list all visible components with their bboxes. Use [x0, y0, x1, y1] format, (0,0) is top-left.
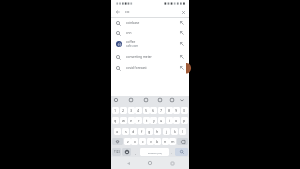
button[interactable]: Emoji [122, 148, 131, 156]
staticText: n [164, 139, 167, 144]
staticText: cnn [126, 31, 132, 35]
button[interactable]: l [179, 128, 186, 135]
button[interactable]: Back [114, 8, 122, 16]
button[interactable]: converting meter [111, 52, 189, 62]
button[interactable]: Search [175, 148, 188, 156]
button[interactable]: More [178, 96, 186, 104]
button[interactable]: Home [145, 158, 155, 168]
staticText: cafe.com [126, 44, 139, 48]
staticText: q [114, 118, 117, 123]
button[interactable]: GIF [127, 96, 135, 104]
staticText: e [130, 118, 133, 123]
button[interactable]: k [171, 128, 178, 135]
button[interactable]: 8 [166, 107, 173, 114]
button[interactable]: r [135, 117, 142, 124]
staticText: b [156, 139, 159, 144]
staticText: o [175, 118, 178, 123]
button[interactable]: Backspace [177, 138, 188, 145]
staticText: 6 [152, 108, 155, 113]
button[interactable]: h [154, 128, 161, 135]
button[interactable]: Recents [167, 158, 177, 168]
button[interactable]: 6 [150, 107, 157, 114]
staticText: 9 [175, 108, 178, 113]
button[interactable]: p [181, 117, 188, 124]
button[interactable]: cnn [111, 28, 189, 38]
button[interactable]: z [124, 138, 131, 145]
staticText: j [166, 129, 167, 134]
staticText: 0 [183, 108, 186, 113]
button[interactable]: Stickers [142, 96, 150, 104]
staticText: co [125, 9, 130, 14]
button[interactable]: Shift [112, 138, 123, 145]
button[interactable]: Insert suggestion [178, 40, 186, 48]
staticText: English (US) [148, 151, 162, 154]
staticText: f [141, 129, 143, 134]
button[interactable]: Insert suggestion [178, 64, 186, 72]
staticText: converting meter [126, 55, 152, 59]
staticText: 2 [122, 108, 125, 113]
staticText: i [169, 118, 170, 123]
button[interactable]: n [162, 138, 169, 145]
button[interactable]: coinbase [111, 18, 189, 28]
staticText: , [135, 150, 136, 155]
button[interactable]: 7 [158, 107, 165, 114]
staticText: y [153, 118, 155, 123]
staticText: 7 [160, 108, 163, 113]
button[interactable]: Back [123, 158, 133, 168]
button[interactable]: 1 [112, 107, 119, 114]
button[interactable]: Insert suggestion [178, 53, 186, 61]
button[interactable]: a [114, 128, 121, 135]
button[interactable]: i [166, 117, 173, 124]
staticText: 8 [168, 108, 171, 113]
staticText: h [156, 129, 159, 134]
button[interactable]: Emoji [112, 96, 120, 104]
staticText: v [150, 139, 152, 144]
staticText: s [125, 129, 127, 134]
button[interactable]: coffee [111, 39, 189, 49]
button[interactable]: 2 [120, 107, 127, 114]
button[interactable]: o [173, 117, 180, 124]
button[interactable]: Translate [156, 96, 164, 104]
staticText: 5 [145, 108, 148, 113]
button[interactable]: c [139, 138, 146, 145]
button[interactable]: Clear [179, 8, 187, 16]
button[interactable]: m [169, 138, 176, 145]
button[interactable]: f [138, 128, 145, 135]
button[interactable]: e [128, 117, 135, 124]
staticText: coffee [126, 40, 136, 44]
button[interactable]: 9 [173, 107, 180, 114]
button[interactable]: covid forecast [111, 63, 189, 73]
button[interactable]: q [112, 117, 119, 124]
button[interactable]: v [147, 138, 154, 145]
staticText: r [138, 118, 140, 123]
button[interactable]: 5 [143, 107, 150, 114]
button[interactable]: y [150, 117, 157, 124]
button[interactable]: 0 [181, 107, 188, 114]
button[interactable]: b [154, 138, 161, 145]
button[interactable]: English (US) [140, 148, 169, 156]
button[interactable]: t [143, 117, 150, 124]
staticText: 3 [130, 108, 133, 113]
button[interactable]: Settings [168, 96, 176, 104]
staticText: coinbase [126, 21, 140, 25]
button[interactable]: u [158, 117, 165, 124]
staticText: 4 [137, 108, 140, 113]
button[interactable]: Insert suggestion [178, 19, 186, 27]
button[interactable]: Insert suggestion [178, 29, 186, 37]
button[interactable]: s [122, 128, 129, 135]
staticText: l [182, 129, 183, 134]
button[interactable]: x [131, 138, 138, 145]
button[interactable]: j [163, 128, 170, 135]
button[interactable]: w [120, 117, 127, 124]
button[interactable]: 4 [135, 107, 142, 114]
staticText: k [174, 129, 176, 134]
staticText: ?123 [114, 150, 120, 154]
staticText: 1 [114, 108, 117, 113]
staticText: . [171, 150, 172, 155]
button[interactable]: . [169, 148, 174, 156]
button[interactable]: d [130, 128, 137, 135]
button[interactable]: 3 [128, 107, 135, 114]
button[interactable]: g [146, 128, 153, 135]
button[interactable]: , [132, 148, 138, 156]
button[interactable]: ?123 [112, 148, 121, 156]
